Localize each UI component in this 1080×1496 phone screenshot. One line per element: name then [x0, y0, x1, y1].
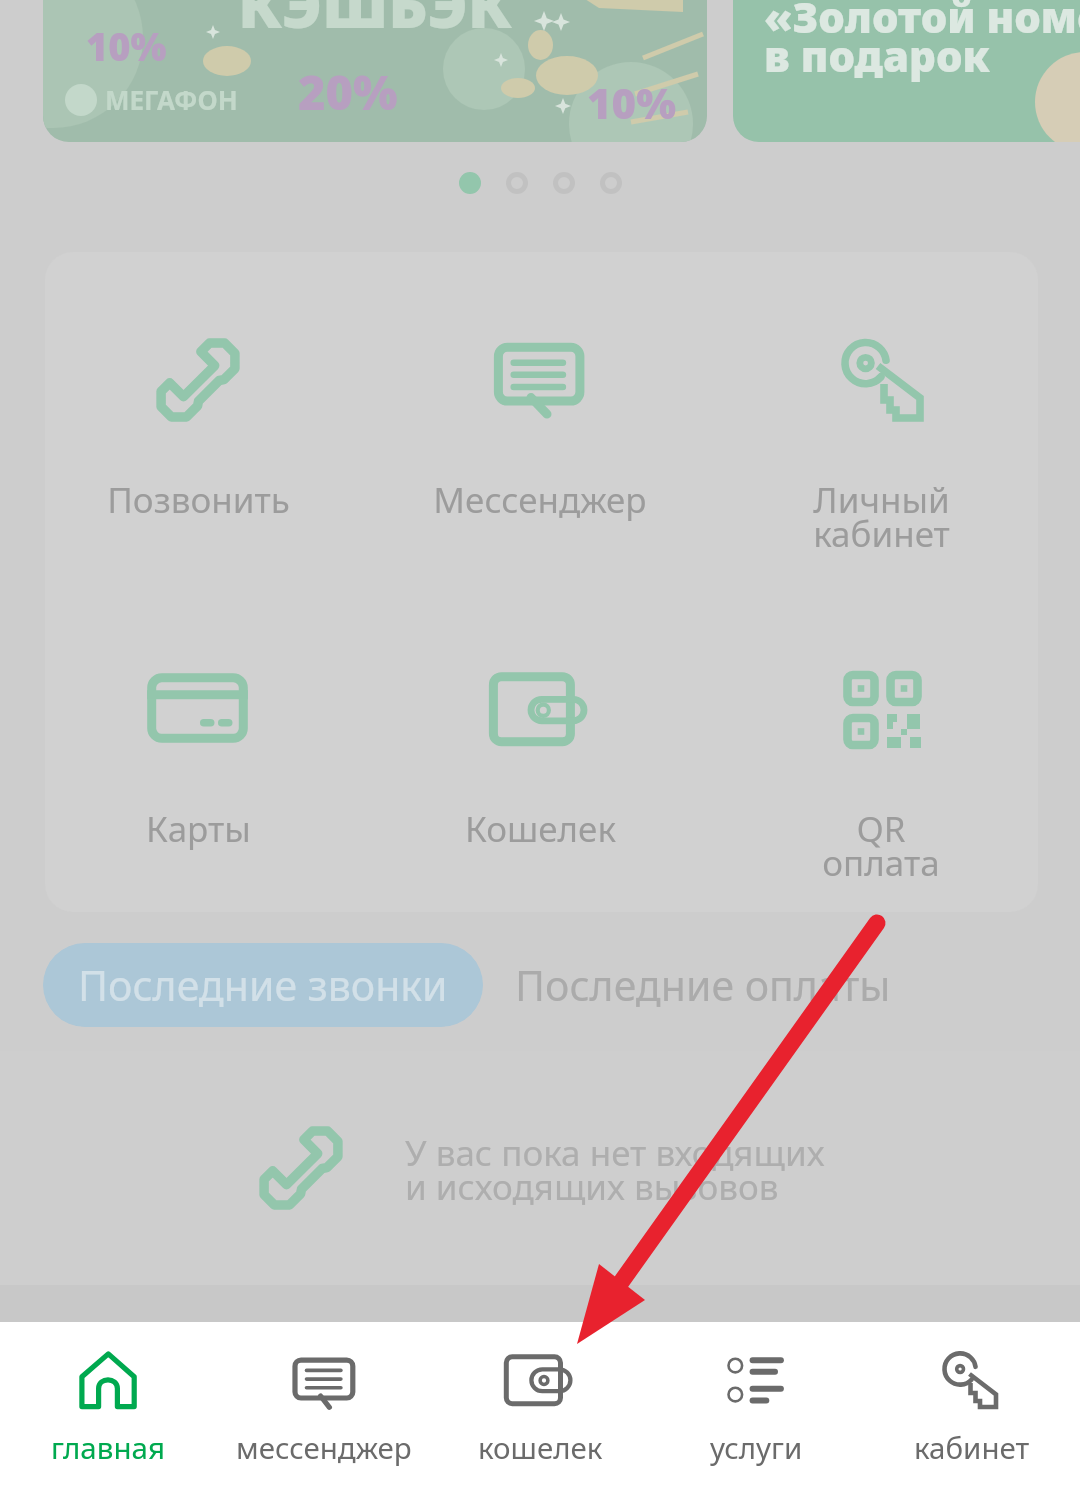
- staticText: 20%: [298, 60, 398, 124]
- button[interactable]: кошелек: [432, 1322, 648, 1496]
- button[interactable]: КЭШБЭК: [43, 0, 707, 142]
- button[interactable]: Позвонить: [48, 307, 348, 507]
- staticText: Личный кабинет: [813, 476, 950, 557]
- button[interactable]: мессенджер: [216, 1322, 432, 1496]
- staticText: 10%: [86, 20, 167, 72]
- staticText: МЕГАФОН: [105, 82, 238, 117]
- staticText: Мессенджер: [433, 476, 647, 524]
- button[interactable]: Последние звонки: [43, 943, 483, 1027]
- button[interactable]: Мессенджер: [390, 307, 690, 507]
- button[interactable]: QR оплата: [731, 636, 1031, 836]
- staticText: «Золотой номер» в подарок: [764, 0, 1080, 84]
- staticText: кошелек: [478, 1427, 603, 1467]
- staticText: главная: [51, 1427, 165, 1467]
- staticText: Последние звонки: [78, 957, 448, 1013]
- staticText: мессенджер: [236, 1427, 412, 1467]
- staticText: Кошелек: [465, 805, 616, 853]
- staticText: Последние оплаты: [515, 957, 891, 1013]
- staticText: У вас пока нет входящих и исходящих вызо…: [405, 1129, 825, 1210]
- button[interactable]: кабинет: [864, 1322, 1080, 1496]
- button[interactable]: Кошелек: [390, 636, 690, 836]
- staticText: Позвонить: [107, 476, 290, 524]
- staticText: Карты: [146, 805, 251, 853]
- button[interactable]: Личный кабинет: [731, 307, 1031, 507]
- staticText: КЭШБЭК: [238, 0, 512, 46]
- button[interactable]: услуги: [648, 1322, 864, 1496]
- staticText: 10%: [587, 74, 677, 131]
- button[interactable]: главная: [0, 1322, 216, 1496]
- button[interactable]: Последние оплаты: [483, 943, 923, 1027]
- staticText: кабинет: [914, 1427, 1030, 1467]
- button[interactable]: «Золотой номер» в подарок: [733, 0, 1080, 142]
- button[interactable]: Карты: [48, 636, 348, 836]
- staticText: услуги: [710, 1427, 803, 1467]
- staticText: QR оплата: [822, 805, 940, 886]
